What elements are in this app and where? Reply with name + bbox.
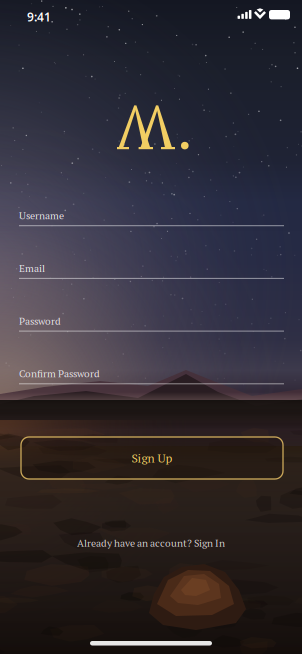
staticText: Email	[19, 261, 45, 275]
button[interactable]: Password	[19, 310, 284, 344]
staticText: Password	[19, 314, 61, 327]
staticText: Sign Up	[131, 450, 172, 466]
staticText: 9:41	[27, 9, 51, 25]
staticText: Username	[19, 209, 64, 222]
staticText: Confirm Password	[19, 367, 100, 380]
button[interactable]: Sign Up	[21, 437, 283, 479]
button[interactable]: Confirm Password	[19, 363, 284, 397]
button[interactable]: Email	[19, 257, 284, 291]
button[interactable]: Username	[19, 205, 284, 239]
staticText: Already have an account? Sign In	[77, 536, 225, 550]
button[interactable]: Already have an account? Sign In	[0, 535, 302, 551]
